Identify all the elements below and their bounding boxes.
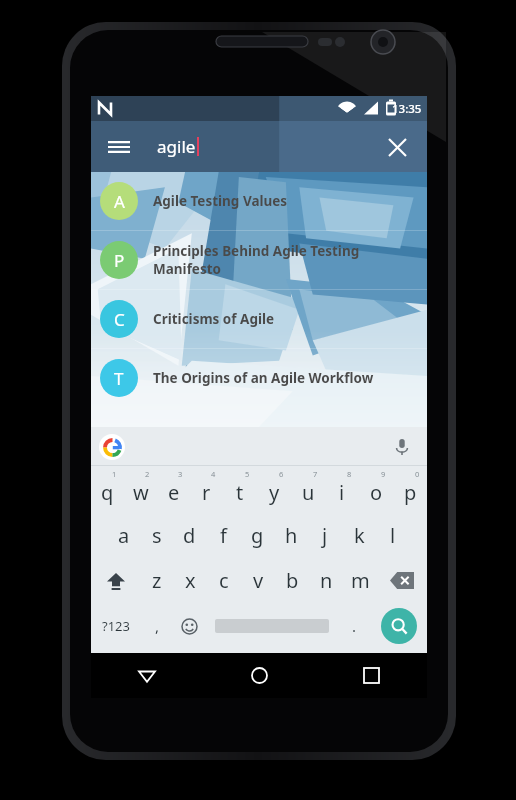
staticText: 2 [145,469,150,479]
button[interactable]: x [173,558,207,603]
button[interactable]: 6 [257,466,291,513]
staticText: d [183,522,196,549]
staticText: e [168,479,180,506]
staticText: r [202,479,211,506]
staticText: o [370,479,383,506]
staticText: j [322,522,328,549]
staticText: y [269,479,280,506]
button[interactable]: l [376,513,410,558]
staticText: 4 [211,469,216,479]
button[interactable]: Space [205,603,338,649]
staticText: 13:35 [392,101,422,117]
staticText: 1 [112,469,117,479]
button[interactable]: 8 [325,466,359,513]
button[interactable]: T [91,349,427,407]
staticText: , [155,616,160,636]
staticText: C [114,308,125,331]
staticText: l [390,522,396,549]
button[interactable]: n [309,558,343,603]
staticText: n [320,567,333,594]
button[interactable]: 1 [91,466,124,513]
button[interactable]: Emoji [173,603,205,649]
button[interactable]: g [240,513,274,558]
button[interactable]: 7 [291,466,325,513]
staticText: p [404,479,417,506]
button[interactable]: a [107,513,140,558]
button[interactable]: Search [370,603,427,649]
button[interactable]: Google [99,434,125,460]
staticText: The Origins of an Agile Workflow [153,369,374,387]
staticText: a [118,522,130,549]
staticText: T [114,367,124,390]
staticText: 8 [347,469,352,479]
staticText: k [354,522,365,549]
staticText: Criticisms of Agile [153,310,275,328]
button[interactable]: Menu [99,127,139,167]
staticText: g [251,522,264,549]
staticText: 6 [279,469,284,479]
button[interactable]: Voice input [387,432,417,462]
staticText: 0 [415,469,420,479]
button[interactable]: 5 [223,466,257,513]
button[interactable]: z [140,558,173,603]
button[interactable]: v [241,558,275,603]
button[interactable]: 3 [157,466,190,513]
button[interactable]: C [91,290,427,348]
staticText: . [352,616,357,636]
button[interactable]: Home [203,653,315,698]
staticText: i [339,479,345,506]
button[interactable]: d [173,513,206,558]
button[interactable]: Clear search [377,127,417,167]
button[interactable]: Back [91,653,203,698]
staticText: u [302,479,315,506]
staticText: v [253,567,264,594]
button[interactable]: Shift [91,558,140,603]
staticText: z [152,567,162,594]
staticText: w [133,479,149,506]
button[interactable]: , [141,603,173,649]
button[interactable]: Backspace [377,558,427,603]
staticText: x [185,567,196,594]
staticText: s [152,522,162,549]
staticText: 7 [313,469,318,479]
staticText: P [114,249,125,272]
staticText: Principles Behind Agile Testing Manifest… [153,242,427,278]
staticText: c [219,567,229,594]
staticText: 3 [178,469,183,479]
button[interactable]: m [343,558,377,603]
button[interactable]: 9 [359,466,393,513]
button[interactable]: Recents [315,653,427,698]
staticText: ?123 [102,617,130,635]
staticText: Agile Testing Values [153,192,288,210]
button[interactable]: 2 [124,466,157,513]
staticText: b [286,567,299,594]
staticText: f [220,522,227,549]
staticText: agile [157,135,196,158]
staticText: h [285,522,298,549]
staticText: 5 [245,469,250,479]
staticText: 9 [381,469,386,479]
button[interactable]: 0 [393,466,427,513]
button[interactable]: s [140,513,173,558]
button[interactable]: ?123 [91,603,141,649]
button[interactable]: h [274,513,308,558]
button[interactable]: A [91,172,427,230]
button[interactable]: k [342,513,376,558]
staticText: t [236,479,244,506]
button[interactable]: c [207,558,241,603]
button[interactable]: . [338,603,370,649]
button[interactable]: b [275,558,309,603]
button[interactable]: 4 [190,466,223,513]
staticText: A [114,190,125,213]
button[interactable]: P [91,231,427,289]
staticText: m [351,567,370,594]
staticText: q [101,479,114,506]
button[interactable]: j [308,513,342,558]
button[interactable]: f [206,513,240,558]
